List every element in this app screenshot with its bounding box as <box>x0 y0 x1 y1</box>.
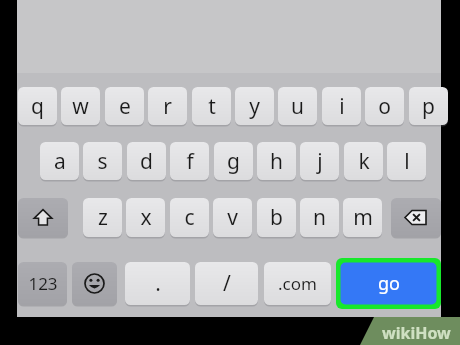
staticText: x <box>140 203 152 232</box>
staticText: m <box>353 203 373 232</box>
button[interactable]: go <box>336 258 441 309</box>
button[interactable]: l <box>387 142 426 180</box>
staticText: o <box>378 92 391 121</box>
staticText: h <box>270 147 283 176</box>
button[interactable]: q <box>18 87 57 125</box>
staticText: k <box>358 147 370 176</box>
staticText: i <box>339 92 345 121</box>
staticText: p <box>422 92 435 121</box>
button[interactable]: f <box>170 142 209 180</box>
staticText: z <box>98 203 108 232</box>
staticText: / <box>223 269 231 298</box>
staticText: t <box>208 92 216 121</box>
button[interactable]: m <box>343 198 382 237</box>
button[interactable]: y <box>235 87 274 125</box>
staticText: c <box>184 203 195 232</box>
button[interactable]: x <box>126 198 165 237</box>
staticText: d <box>140 147 153 176</box>
staticText: b <box>270 203 283 232</box>
staticText: w <box>72 92 89 121</box>
button[interactable]: . <box>125 262 190 305</box>
button[interactable]: j <box>300 142 339 180</box>
button[interactable]: Shift <box>18 198 68 237</box>
staticText: v <box>227 203 238 232</box>
staticText: g <box>227 147 240 176</box>
button[interactable]: b <box>257 198 296 237</box>
button[interactable]: Backspace <box>391 198 441 237</box>
staticText: go <box>378 271 400 296</box>
button[interactable]: o <box>365 87 404 125</box>
staticText: 123 <box>28 272 58 295</box>
button[interactable]: Emoji <box>72 262 117 305</box>
staticText: . <box>155 269 161 298</box>
staticText: u <box>291 92 304 121</box>
button[interactable]: u <box>278 87 317 125</box>
staticText: a <box>54 147 66 176</box>
staticText: l <box>404 147 410 176</box>
button[interactable]: t <box>192 87 231 125</box>
button[interactable]: .com <box>264 262 331 305</box>
staticText: wikiHow <box>382 322 451 344</box>
staticText: y <box>249 92 260 121</box>
staticText: q <box>31 92 44 121</box>
button[interactable]: n <box>300 198 339 237</box>
button[interactable]: z <box>83 198 122 237</box>
staticText: n <box>313 203 326 232</box>
button[interactable]: a <box>40 142 79 180</box>
staticText: e <box>119 92 131 121</box>
button[interactable]: r <box>148 87 187 125</box>
button[interactable]: p <box>409 87 448 125</box>
staticText: s <box>97 147 108 176</box>
button[interactable]: d <box>127 142 166 180</box>
button[interactable]: c <box>170 198 209 237</box>
button[interactable]: k <box>344 142 383 180</box>
button[interactable]: g <box>214 142 253 180</box>
button[interactable]: e <box>105 87 144 125</box>
staticText: j <box>317 147 323 176</box>
staticText: .com <box>278 272 317 295</box>
staticText: f <box>186 147 194 176</box>
button[interactable]: v <box>213 198 252 237</box>
button[interactable]: s <box>83 142 122 180</box>
button[interactable]: w <box>61 87 100 125</box>
button[interactable]: 123 <box>18 262 67 305</box>
button[interactable]: / <box>195 262 258 305</box>
staticText: r <box>163 92 172 121</box>
button[interactable]: i <box>322 87 361 125</box>
button[interactable]: h <box>257 142 296 180</box>
